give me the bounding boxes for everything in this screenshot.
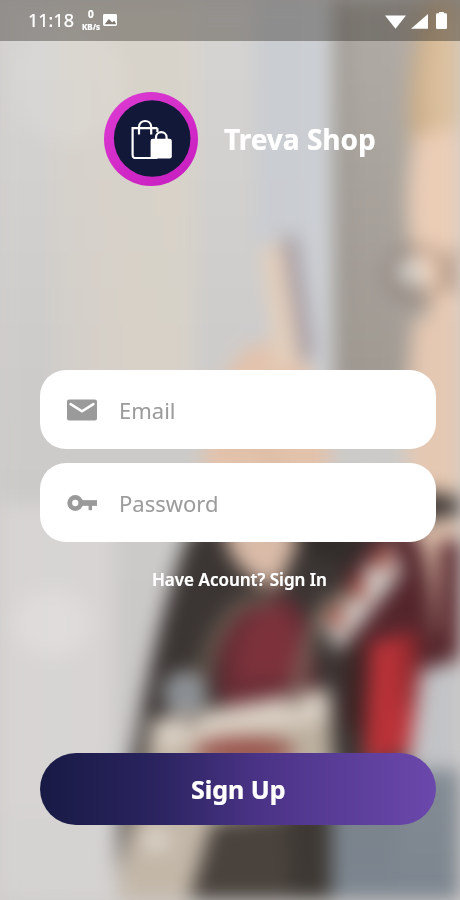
- staticText: 11:18: [28, 8, 75, 33]
- button[interactable]: Email icon: [40, 370, 436, 449]
- other: Screenshot: [103, 13, 117, 27]
- staticText: KB/s: [82, 21, 100, 32]
- staticText: Sign Up: [191, 772, 286, 806]
- button[interactable]: Password icon: [40, 463, 436, 542]
- staticText: 0: [88, 7, 94, 21]
- other: Treva Shop logo: [104, 92, 198, 186]
- other: Password icon: [67, 488, 97, 518]
- button[interactable]: Have Acount? Sign In: [146, 565, 333, 594]
- staticText: Have Acount? Sign In: [152, 568, 327, 591]
- button[interactable]: Sign Up: [40, 753, 436, 825]
- other: Email icon: [67, 395, 97, 425]
- staticText: Email: [119, 395, 176, 425]
- staticText: Password: [119, 488, 219, 518]
- staticText: Treva Shop: [224, 120, 376, 158]
